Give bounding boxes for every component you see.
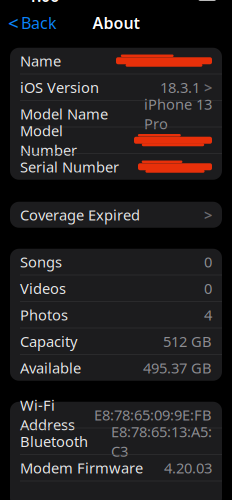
staticText: 495.37 GB bbox=[143, 358, 212, 377]
staticText: Capacity bbox=[20, 331, 77, 351]
staticText: Name bbox=[20, 51, 61, 70]
staticText: Wi-Fi Address bbox=[20, 395, 75, 434]
staticText: Modem Firmware bbox=[20, 458, 143, 477]
staticText: Songs bbox=[20, 252, 62, 271]
button[interactable]: < bbox=[0, 10, 65, 36]
staticText: < bbox=[8, 10, 19, 35]
staticText: Back bbox=[21, 12, 57, 33]
staticText: About bbox=[92, 12, 139, 33]
staticText: > bbox=[204, 77, 212, 97]
staticText: E8:78:65:13:A5:C3 bbox=[111, 422, 212, 461]
button[interactable]: Coverage Expired bbox=[10, 202, 222, 228]
staticText: Coverage Expired bbox=[20, 205, 140, 224]
staticText: 4 bbox=[204, 305, 212, 324]
staticText: Model Number bbox=[20, 121, 77, 160]
staticText: 18.3.1 bbox=[160, 77, 200, 97]
staticText: > bbox=[204, 205, 212, 224]
staticText: iPhone 13 Pro bbox=[144, 94, 212, 133]
staticText: Model Name bbox=[20, 104, 108, 123]
staticText: E8:78:65:09:9E:FB bbox=[94, 405, 212, 424]
staticText: 512 GB bbox=[163, 331, 212, 351]
button[interactable]: iOS Version bbox=[10, 74, 222, 100]
staticText: Photos bbox=[20, 305, 68, 324]
staticText: 0 bbox=[204, 252, 212, 271]
staticText: Serial Number bbox=[20, 157, 119, 176]
staticText: Videos bbox=[20, 278, 66, 298]
staticText: 1:06 bbox=[28, 0, 59, 6]
staticText: Available bbox=[20, 358, 81, 377]
staticText: 0 bbox=[204, 278, 212, 298]
staticText: 4.20.03 bbox=[164, 458, 212, 477]
staticText: Bluetooth bbox=[20, 431, 88, 451]
staticText: iOS Version bbox=[20, 77, 99, 97]
